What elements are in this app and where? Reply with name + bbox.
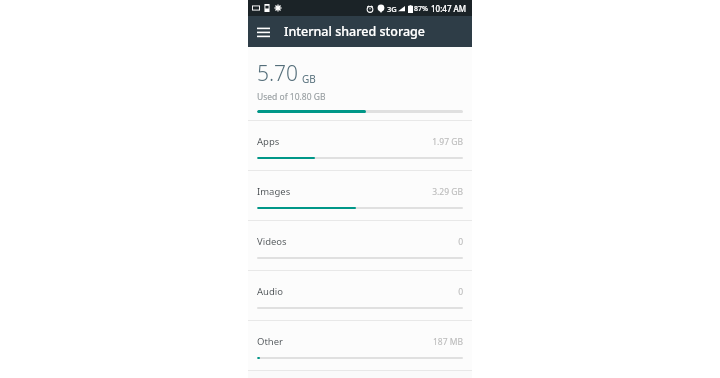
button[interactable]: 5.70 — [248, 47, 472, 120]
staticText: 0 — [458, 286, 463, 298]
staticText: 3.29 GB — [432, 186, 463, 198]
staticText: 187 MB — [432, 336, 463, 348]
staticText: 1.97 GB — [432, 136, 463, 148]
staticText: Audio — [257, 285, 283, 298]
staticText: Used of 10.80 GB — [257, 91, 326, 103]
button[interactable]: Videos — [248, 221, 472, 270]
staticText: 0 — [458, 236, 463, 248]
staticText: GB — [302, 72, 316, 86]
staticText: 5.70 — [257, 59, 299, 88]
staticText: Images — [257, 185, 291, 198]
staticText: 3G — [387, 4, 397, 14]
staticText: 87% — [414, 4, 428, 14]
staticText: Videos — [257, 235, 287, 248]
button[interactable]: Images — [248, 171, 472, 220]
button[interactable]: Other — [248, 321, 472, 370]
button[interactable]: Audio — [248, 271, 472, 320]
button[interactable]: Open navigation menu — [248, 16, 279, 47]
button[interactable]: Apps — [248, 121, 472, 170]
staticText: Internal shared storage — [284, 23, 426, 40]
staticText: Other — [257, 335, 284, 348]
staticText: 10:47 AM — [431, 3, 467, 14]
staticText: Apps — [257, 135, 280, 148]
